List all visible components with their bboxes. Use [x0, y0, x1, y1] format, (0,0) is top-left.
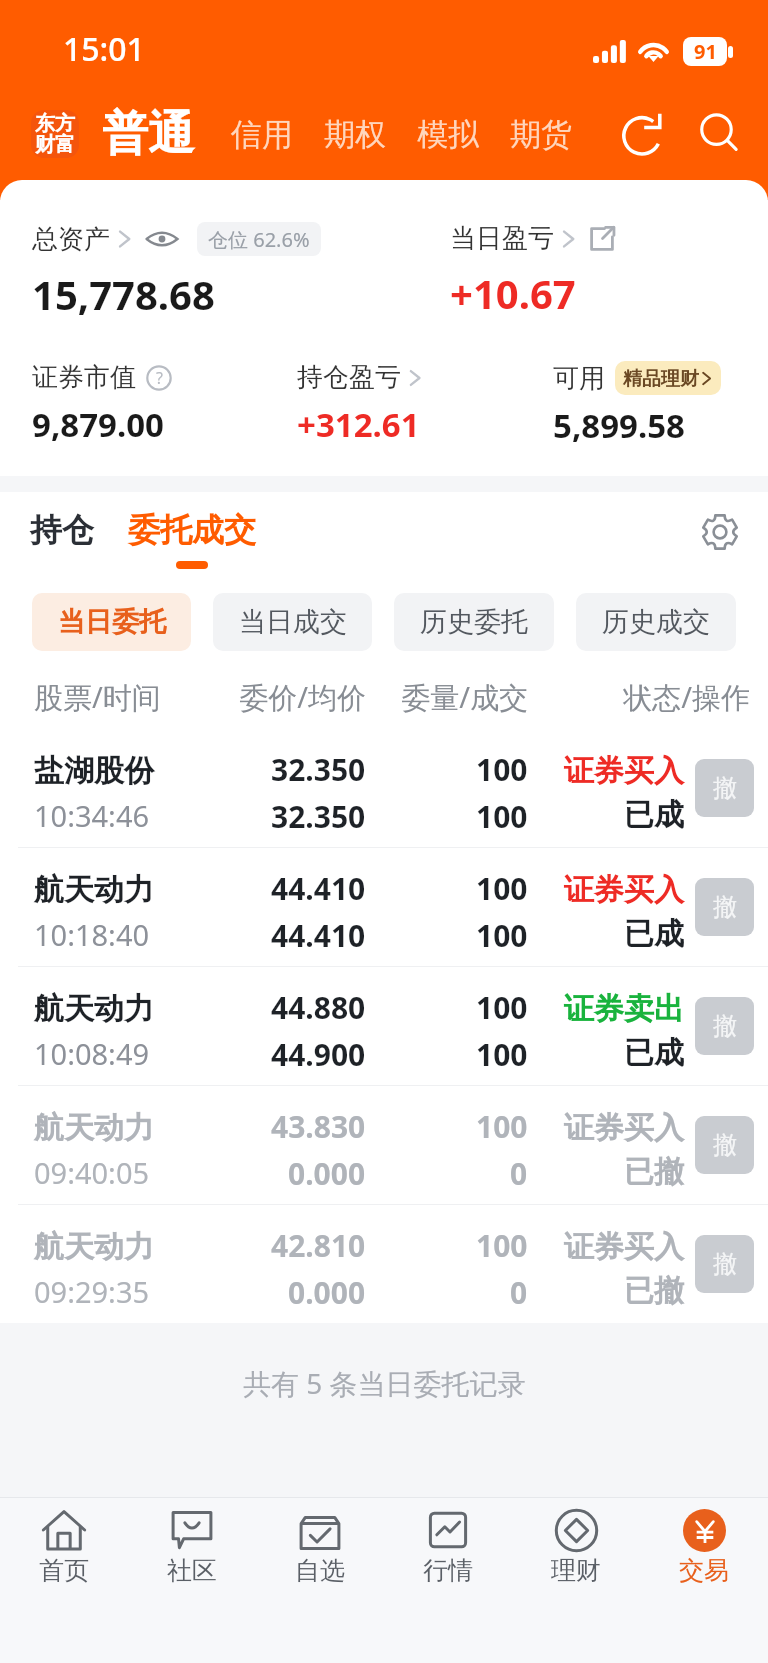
staticText: 0.000 — [288, 1272, 366, 1313]
staticText: 状态/操作 — [528, 677, 750, 717]
button[interactable]: 撤 — [695, 1235, 754, 1293]
staticText: ? — [156, 367, 163, 389]
staticText: 44.900 — [271, 1034, 366, 1075]
staticText: 证券市值 — [32, 361, 136, 394]
staticText: 0 — [510, 1153, 528, 1194]
button[interactable]: 委托成交 — [128, 510, 256, 569]
staticText: 15,778.68 — [32, 267, 215, 321]
button[interactable]: 当日委托 — [32, 593, 191, 651]
button[interactable]: Refresh — [615, 107, 669, 161]
staticText: 32.350 — [271, 796, 366, 837]
staticText: 仓位 62.6% — [208, 226, 310, 253]
button[interactable]: 撤 — [695, 759, 754, 817]
staticText: 期货 — [510, 115, 572, 154]
staticText: +10.67 — [450, 266, 576, 320]
button[interactable]: 航天动力 — [34, 1086, 754, 1204]
staticText: 历史委托 — [420, 605, 528, 639]
staticText: 100 — [476, 915, 528, 956]
staticText: 0.000 — [288, 1153, 366, 1194]
staticText: 10:08:49 — [34, 1034, 150, 1073]
staticText: 当日委托 — [58, 605, 166, 639]
staticText: 委托成交 — [128, 510, 256, 550]
staticText: 自选 — [295, 1555, 345, 1586]
staticText: 证券卖出 — [564, 990, 684, 1028]
staticText: 普通 — [102, 105, 194, 163]
button[interactable]: 理财 — [512, 1498, 640, 1663]
staticText: 持仓 — [30, 510, 94, 550]
button[interactable]: 历史委托 — [394, 593, 554, 651]
staticText: 撤 — [713, 773, 737, 803]
staticText: 共有 5 条当日委托记录 — [243, 1364, 526, 1402]
button[interactable]: 航天动力 — [34, 967, 754, 1085]
button[interactable]: Search — [693, 107, 747, 161]
button[interactable]: 盐湖股份 — [34, 729, 754, 847]
button[interactable]: 航天动力 — [34, 848, 754, 966]
button[interactable]: 航天动力 — [34, 1205, 754, 1323]
staticText: 已成 — [624, 1034, 684, 1072]
button[interactable]: 当日成交 — [213, 593, 372, 651]
staticText: 100 — [476, 1225, 528, 1266]
button[interactable]: 精品理财 — [615, 361, 721, 395]
staticText: 信用 — [231, 115, 293, 154]
button[interactable]: 行情 — [384, 1498, 512, 1663]
button[interactable]: 自选 — [256, 1498, 384, 1663]
button[interactable]: 撤 — [695, 997, 754, 1055]
staticText: 当日盈亏 — [450, 222, 554, 255]
staticText: 证券买入 — [564, 871, 684, 909]
staticText: 0 — [510, 1272, 528, 1313]
staticText: 42.810 — [271, 1225, 366, 1266]
staticText: 已成 — [624, 915, 684, 953]
button[interactable]: 交易 — [640, 1498, 768, 1663]
staticText: 期权 — [324, 115, 386, 154]
staticText: 证券买入 — [564, 1228, 684, 1266]
staticText: 航天动力 — [34, 871, 154, 909]
staticText: 持仓盈亏 — [297, 361, 401, 394]
staticText: 09:40:05 — [34, 1153, 150, 1192]
staticText: 100 — [476, 868, 528, 909]
staticText: 证券买入 — [564, 1109, 684, 1147]
button[interactable]: 历史成交 — [576, 593, 736, 651]
staticText: 证券买入 — [564, 752, 684, 790]
staticText: 100 — [476, 1106, 528, 1147]
staticText: 首页 — [39, 1555, 89, 1586]
staticText: 交易 — [679, 1555, 729, 1586]
staticText: 5,899.58 — [553, 403, 685, 448]
staticText: 100 — [476, 1034, 528, 1075]
staticText: 盐湖股份 — [34, 752, 154, 790]
staticText: 总资产 — [32, 223, 110, 256]
staticText: 43.830 — [271, 1106, 366, 1147]
button[interactable]: 撤 — [695, 1116, 754, 1174]
staticText: 32.350 — [271, 749, 366, 790]
button[interactable]: 首页 — [0, 1498, 128, 1663]
staticText: 44.880 — [271, 987, 366, 1028]
staticText: 10:18:40 — [34, 915, 150, 954]
staticText: 9,879.00 — [32, 402, 164, 447]
staticText: 撤 — [713, 1249, 737, 1279]
staticText: 100 — [476, 796, 528, 837]
staticText: 10:34:46 — [34, 796, 150, 835]
staticText: 航天动力 — [34, 1228, 154, 1266]
staticText: 委价/均价 — [204, 677, 366, 717]
staticText: 44.410 — [271, 915, 366, 956]
staticText: 委量/成交 — [366, 677, 528, 717]
staticText: 理财 — [551, 1555, 601, 1586]
staticText: 航天动力 — [34, 990, 154, 1028]
staticText: 100 — [476, 749, 528, 790]
staticText: 09:29:35 — [34, 1272, 150, 1311]
staticText: +312.61 — [297, 402, 420, 447]
staticText: 社区 — [167, 1555, 217, 1586]
button[interactable]: Settings — [698, 510, 742, 554]
staticText: 44.410 — [271, 868, 366, 909]
staticText: 精品理财 — [623, 367, 699, 391]
staticText: 撤 — [713, 1130, 737, 1160]
button[interactable]: 撤 — [695, 878, 754, 936]
staticText: 15:01 — [63, 27, 145, 71]
button[interactable]: 持仓 — [28, 510, 96, 550]
staticText: 91 — [694, 38, 717, 65]
staticText: 财富 — [35, 132, 75, 157]
staticText: 已成 — [624, 796, 684, 834]
staticText: 撤 — [713, 892, 737, 922]
button[interactable]: 社区 — [128, 1498, 256, 1663]
staticText: 可用 — [553, 362, 605, 395]
staticText: 模拟 — [417, 115, 479, 154]
